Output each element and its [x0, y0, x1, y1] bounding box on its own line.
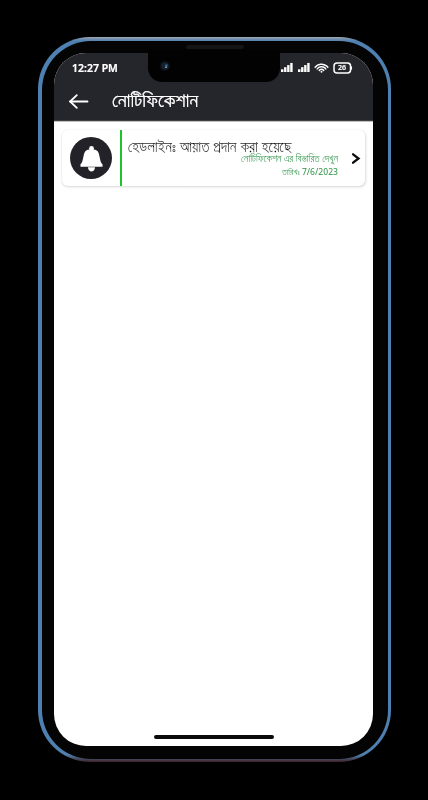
staticText: 26: [338, 63, 347, 73]
staticText: নোটিফিকেশান: [112, 91, 199, 111]
staticText: 12:27 PM: [72, 61, 118, 75]
button[interactable]: Back: [64, 87, 93, 116]
staticText: তারিখঃ 7/6/2023: [128, 166, 338, 178]
button[interactable]: হেডলাইনঃ আয়াত প্রদান করা হয়েছে: [62, 130, 365, 186]
staticText: নোটিফিকেশন এর বিস্তারিত দেখুন: [128, 152, 338, 165]
staticText: হেডলাইনঃ আয়াত প্রদান করা হয়েছে: [128, 136, 292, 156]
